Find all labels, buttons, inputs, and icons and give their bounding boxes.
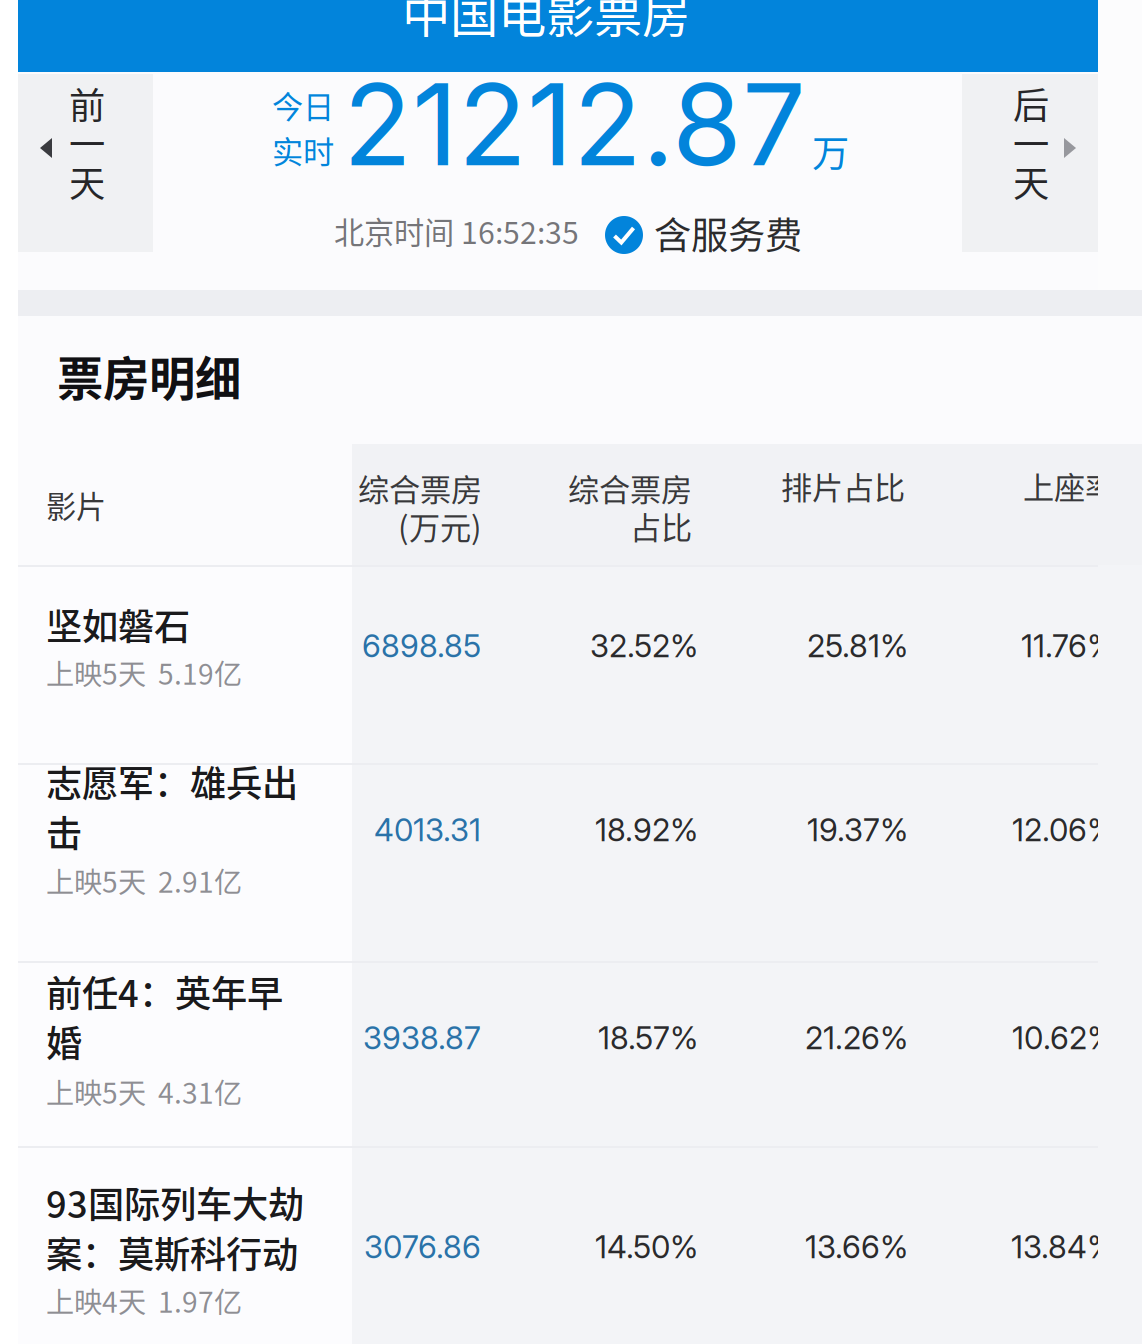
staticText: 综合票房 [358, 465, 482, 510]
staticText: 上映5天 5.19亿 [46, 652, 242, 693]
staticText: 影片 [46, 483, 106, 527]
staticText: 排片占比 [781, 463, 905, 508]
staticText: 21.26% [805, 1019, 908, 1057]
staticText: 综合票房 [568, 465, 692, 510]
staticText: 一 [1013, 116, 1049, 168]
staticText: 上映5天 2.91亿 [46, 860, 242, 901]
staticText: 前 [69, 77, 105, 129]
staticText: 11.76% [1021, 627, 1115, 665]
staticText: 后 [1013, 77, 1049, 129]
button[interactable] [0, 763, 1124, 961]
staticText: (万元) [398, 503, 482, 548]
staticText: 上映4天 1.97亿 [46, 1280, 242, 1321]
staticText: 志愿军：雄兵出 [46, 755, 298, 807]
staticText: 占比 [630, 503, 692, 548]
staticText: 击 [46, 805, 82, 857]
staticText: 婚 [46, 1015, 82, 1067]
staticText: 18.92% [595, 811, 698, 849]
button[interactable]: 前一天 [18, 74, 153, 252]
staticText: 含服务费 [654, 206, 802, 260]
staticText: 13.84% [1011, 1228, 1115, 1266]
staticText: 一 [69, 116, 105, 168]
staticText: 万 [812, 124, 849, 178]
button[interactable] [0, 565, 1124, 763]
staticText: 32.52% [590, 627, 698, 665]
staticText: 前任4：英年早 [46, 965, 283, 1017]
staticText: 票房明细 [57, 342, 241, 409]
staticText: 19.37% [807, 811, 908, 849]
staticText: 93国际列车大劫 [46, 1176, 304, 1228]
staticText: 天 [69, 155, 105, 207]
staticText: 12.06% [1012, 811, 1115, 849]
staticText: 天 [1013, 155, 1049, 207]
staticText: 6898.85 [362, 627, 481, 665]
button[interactable]: 后一天 [962, 74, 1098, 252]
staticText: 18.57% [598, 1019, 698, 1057]
staticText: 实时 [272, 127, 334, 172]
button[interactable] [0, 1146, 1124, 1344]
staticText: 北京时间 16:52:35 [334, 209, 579, 253]
staticText: 13.66% [805, 1228, 908, 1266]
staticText: 3938.87 [363, 1019, 481, 1057]
staticText: 中国电影票房 [402, 0, 690, 47]
staticText: 坚如磐石 [46, 598, 190, 650]
staticText: 14.50% [595, 1228, 698, 1266]
staticText: 今日 [272, 82, 334, 127]
staticText: 25.81% [807, 627, 908, 665]
button[interactable] [0, 961, 1124, 1146]
staticText: 3076.86 [364, 1228, 481, 1266]
staticText: 21212.87 [343, 56, 806, 192]
staticText: 4013.31 [374, 811, 481, 849]
staticText: 案：莫斯科行动 [46, 1226, 298, 1278]
staticText: 上映5天 4.31亿 [46, 1071, 242, 1112]
staticText: 上座率 [1023, 463, 1116, 508]
staticText: 10.62% [1012, 1019, 1115, 1057]
